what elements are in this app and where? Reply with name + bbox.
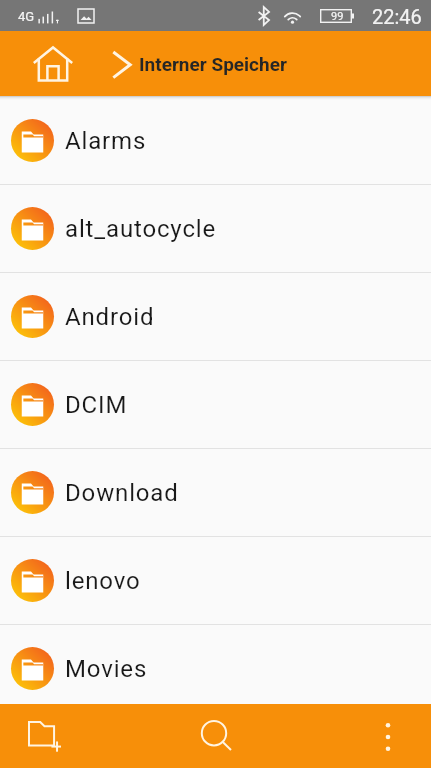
- staticText: DCIM: [65, 391, 128, 419]
- staticText: alt_autocycle: [65, 215, 217, 243]
- staticText: 99: [331, 10, 344, 23]
- staticText: Interner Speicher: [139, 53, 287, 75]
- button[interactable]: Movies: [0, 624, 431, 712]
- staticText: lenovo: [65, 567, 141, 595]
- button[interactable]: Android: [0, 272, 431, 360]
- staticText: Download: [65, 479, 179, 507]
- button[interactable]: Home: [20, 31, 86, 96]
- button[interactable]: alt_autocycle: [0, 184, 431, 272]
- staticText: Android: [65, 303, 155, 331]
- button[interactable]: Alarms: [0, 96, 431, 184]
- button[interactable]: DCIM: [0, 360, 431, 448]
- button[interactable]: lenovo: [0, 536, 431, 624]
- button[interactable]: Download: [0, 448, 431, 536]
- button[interactable]: New folder: [3, 704, 85, 768]
- button[interactable]: Search: [176, 704, 258, 768]
- staticText: Movies: [65, 655, 148, 683]
- staticText: Alarms: [65, 127, 147, 155]
- button[interactable]: More options: [347, 704, 429, 768]
- staticText: 4G: [18, 9, 35, 24]
- button[interactable]: Interner Speicher: [108, 31, 287, 96]
- staticText: 22:46: [372, 5, 422, 28]
